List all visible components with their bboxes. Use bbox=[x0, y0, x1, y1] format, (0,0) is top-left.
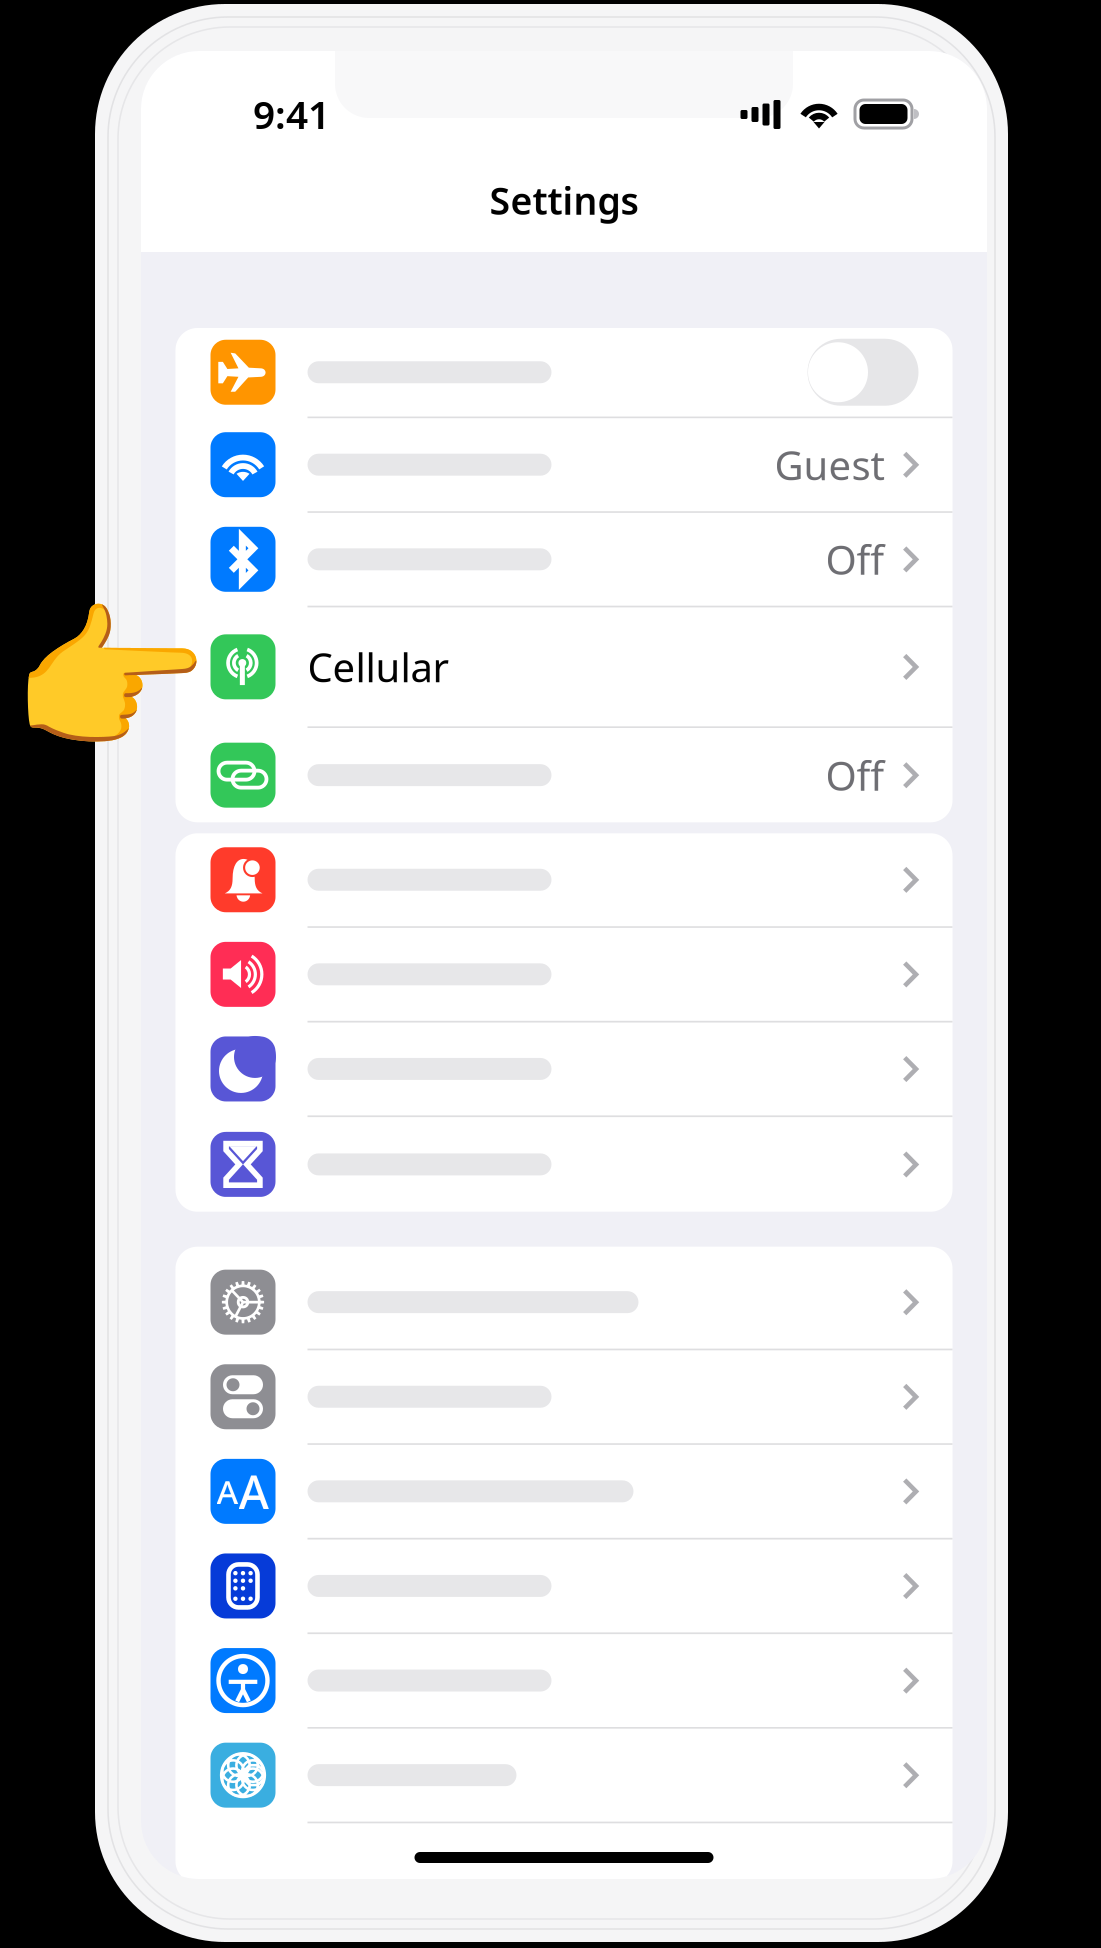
button[interactable] bbox=[175, 1634, 952, 1727]
button[interactable] bbox=[175, 328, 952, 416]
button[interactable] bbox=[175, 833, 952, 926]
button[interactable]: A bbox=[175, 1445, 952, 1538]
button[interactable] bbox=[175, 1539, 952, 1632]
staticText: Off bbox=[825, 533, 884, 586]
staticText: Guest bbox=[774, 438, 884, 491]
staticText: Settings bbox=[489, 175, 638, 225]
button[interactable] bbox=[175, 1350, 952, 1443]
button[interactable] bbox=[175, 1729, 952, 1822]
button[interactable]: Off bbox=[175, 513, 952, 606]
staticText: A bbox=[216, 1469, 238, 1513]
staticText: A bbox=[238, 1460, 269, 1522]
button[interactable] bbox=[175, 1117, 952, 1212]
button[interactable]: Off bbox=[175, 728, 952, 822]
staticText: Off bbox=[825, 749, 884, 802]
staticText: 9:41 bbox=[253, 88, 330, 140]
button[interactable] bbox=[175, 1256, 952, 1349]
button[interactable] bbox=[175, 1022, 952, 1115]
staticText: 👉 bbox=[10, 590, 209, 773]
button[interactable] bbox=[175, 928, 952, 1021]
staticText: Cellular bbox=[307, 640, 449, 693]
button[interactable]: Cellular bbox=[175, 607, 952, 726]
button[interactable]: Guest bbox=[175, 418, 952, 511]
